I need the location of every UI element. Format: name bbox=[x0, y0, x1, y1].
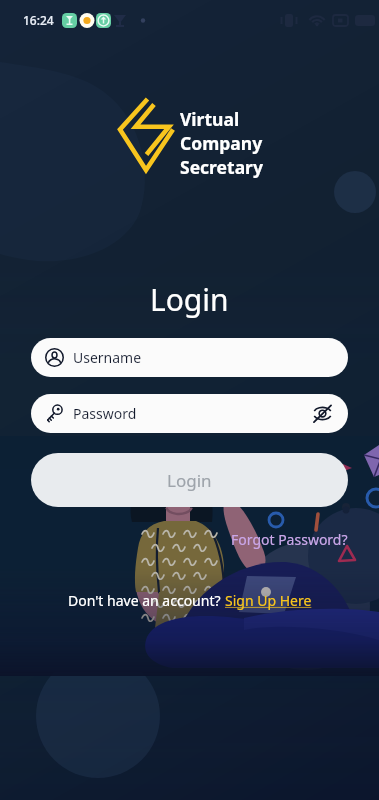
staticText: Company bbox=[180, 131, 263, 155]
staticText: Secretary bbox=[180, 155, 263, 179]
button[interactable]: Sign Up Here bbox=[225, 591, 312, 610]
button[interactable]: Username bbox=[31, 338, 348, 377]
staticText: Don't have an account? bbox=[68, 591, 225, 610]
button[interactable]: Show password bbox=[313, 404, 332, 423]
staticText: 16:24 bbox=[23, 12, 54, 28]
staticText: Password bbox=[73, 404, 137, 423]
staticText: Login bbox=[150, 279, 229, 320]
button[interactable]: Password bbox=[31, 394, 348, 433]
button[interactable]: Forgot Password? bbox=[231, 530, 348, 549]
staticText: Virtual bbox=[180, 107, 240, 131]
staticText: Login bbox=[167, 469, 212, 492]
button[interactable]: Login bbox=[31, 453, 348, 507]
staticText: Username bbox=[73, 348, 142, 367]
staticText: Sign Up Here bbox=[225, 591, 312, 610]
staticText: Forgot Password? bbox=[231, 530, 348, 549]
